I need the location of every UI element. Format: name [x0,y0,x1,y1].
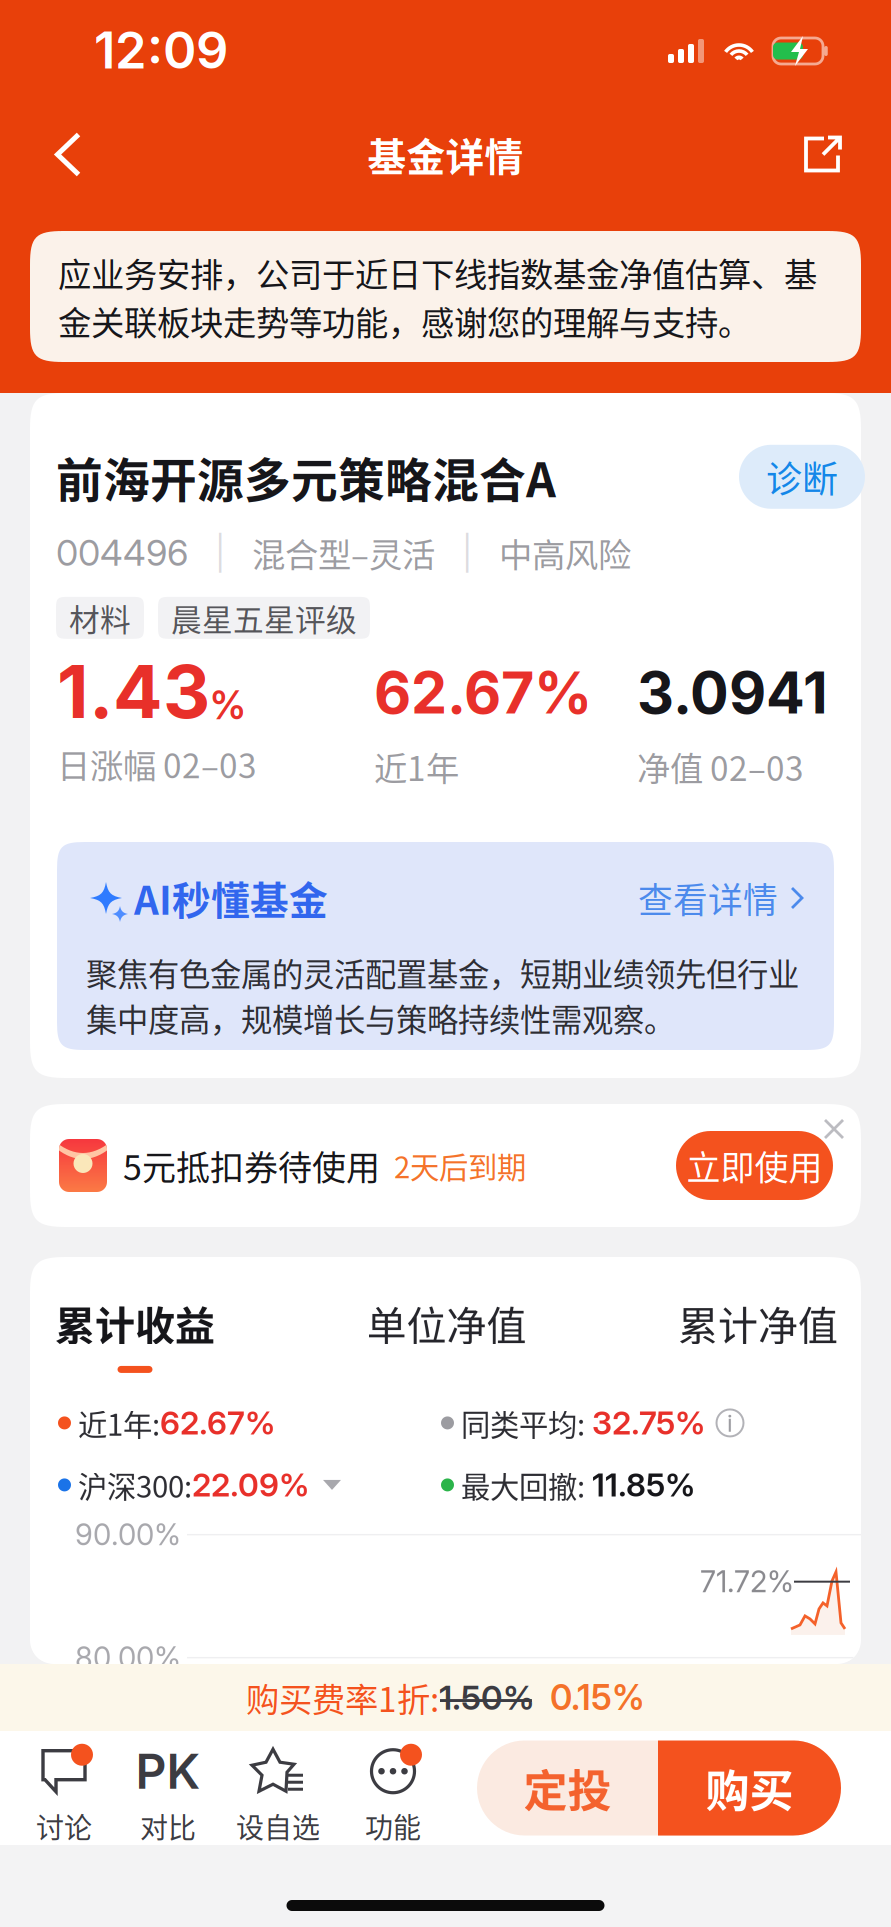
staticText: 应业务安排，公司于近日下线指数基金净值估算、基金关联板块走势等功能，感谢您的理解… [58,248,817,345]
button[interactable]: 单位净值 [362,1294,530,1352]
staticText: 2天后到期 [380,1144,526,1187]
staticText: | [435,532,499,573]
button[interactable]: 定投 [477,1740,658,1835]
staticText: i [727,1408,733,1437]
staticText: 聚焦有色金属的灵活配置基金，短期业绩领先但行业集中度高，规模增长与策略持续性需观… [86,950,799,1041]
button[interactable]: 讨论 [12,1731,116,1845]
staticText: 5元抵扣券待使用 [123,1141,380,1190]
button[interactable]: 查看详情 [638,873,805,923]
staticText: 22.09% [192,1466,309,1504]
staticText: 1.43 [57,647,210,735]
button[interactable]: Share [783,114,863,194]
button[interactable]: 诊断 [735,445,861,509]
button[interactable]: 立即使用 [676,1131,833,1200]
staticText: 004496 [56,531,188,574]
staticText: 购买 [705,1756,793,1820]
staticText: % [210,682,246,729]
staticText: 71.72% [700,1564,794,1599]
button[interactable]: 累计净值 [670,1294,838,1352]
staticText: 近1年: [71,1402,160,1444]
staticText: 晨星五星评级 [171,596,357,640]
button[interactable]: 累计收益 [55,1294,223,1373]
button[interactable]: Close [807,1104,861,1154]
button[interactable]: 功能 [336,1731,450,1845]
staticText: 单位净值 [366,1294,526,1352]
staticText: PK [135,1742,200,1800]
staticText: 诊断 [766,451,838,503]
staticText: 32.75% [592,1404,705,1442]
staticText: 12:09 [94,19,228,81]
staticText: 中高风险 [499,529,631,577]
staticText: AI秒懂基金 [134,870,328,926]
staticText: 同类平均: [454,1402,592,1444]
staticText: 定投 [523,1756,611,1820]
staticText: 62.67% [374,658,592,727]
staticText: 0.15% [534,1676,645,1718]
staticText: 对比 [140,1806,196,1846]
staticText: 最大回撤: [454,1464,592,1506]
staticText: 查看详情 [638,873,778,923]
staticText: 材料 [69,596,131,640]
button[interactable]: PK [116,1731,220,1845]
staticText: 基金详情 [367,126,523,182]
staticText: 3.0941 [637,658,828,727]
staticText: 功能 [365,1806,421,1846]
staticText: 前海开源多元策略混合A [56,443,556,511]
staticText: 90.00% [75,1517,181,1552]
staticText: 近1年 [374,742,459,790]
staticText: 累计收益 [55,1294,215,1352]
staticText: 80.00% [75,1640,181,1675]
staticText: 11.85% [592,1466,695,1504]
staticText: 累计净值 [678,1294,838,1352]
button[interactable]: Back [28,114,108,194]
staticText: 购买费率1折: [246,1673,439,1722]
staticText: 混合型–灵活 [252,529,435,577]
staticText: 62.67% [160,1404,275,1442]
button[interactable]: 购买 [658,1740,841,1835]
staticText: 立即使用 [686,1141,822,1190]
staticText: 讨论 [36,1806,92,1846]
button[interactable]: 设自选 [220,1731,336,1845]
staticText: 日涨幅 02–03 [57,740,257,788]
staticText: | [188,532,252,573]
staticText: 1.50% [439,1677,534,1718]
staticText: 净值 02–03 [637,742,804,790]
staticText: 沪深300: [71,1464,192,1506]
staticText: 设自选 [236,1806,320,1846]
